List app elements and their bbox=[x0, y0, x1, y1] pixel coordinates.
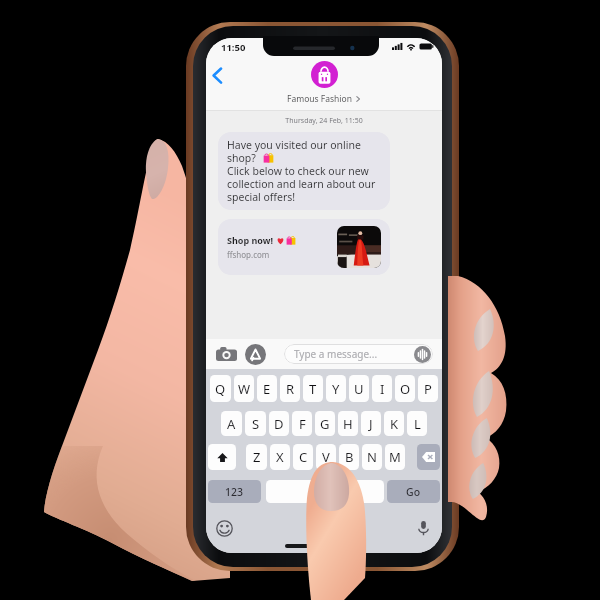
button[interactable]: B bbox=[339, 444, 359, 470]
button[interactable]: X bbox=[270, 444, 290, 470]
button[interactable]: 123 bbox=[208, 480, 261, 503]
staticText: Z bbox=[253, 448, 261, 466]
staticText: T bbox=[309, 380, 317, 398]
button[interactable]: U bbox=[349, 375, 369, 402]
button[interactable]: O bbox=[395, 375, 415, 402]
staticText: Thursday, 24 Feb, 11:50 bbox=[206, 116, 442, 126]
staticText: Famous Fashion bbox=[287, 93, 352, 105]
button[interactable]: Backspace bbox=[417, 444, 440, 470]
button[interactable]: W bbox=[234, 375, 254, 402]
button[interactable]: S bbox=[245, 411, 266, 436]
button[interactable]: K bbox=[384, 411, 404, 436]
staticText: 123 bbox=[225, 485, 244, 499]
staticText: D bbox=[274, 415, 284, 433]
staticText: Y bbox=[332, 380, 340, 398]
button[interactable]: H bbox=[338, 411, 358, 436]
staticText: Q bbox=[215, 380, 226, 398]
button[interactable]: Shift bbox=[208, 444, 236, 470]
button[interactable]: Z bbox=[246, 444, 267, 470]
staticText: B bbox=[345, 448, 354, 466]
button[interactable]: Q bbox=[210, 375, 231, 402]
button[interactable]: N bbox=[362, 444, 382, 470]
staticText: S bbox=[252, 415, 260, 433]
button[interactable]: Have you visited our online shop? Click … bbox=[218, 132, 390, 210]
staticText: ffshop.com bbox=[227, 249, 270, 260]
button[interactable]: Back bbox=[207, 65, 229, 87]
staticText: O bbox=[400, 380, 411, 398]
staticText: R bbox=[286, 380, 295, 398]
staticText: I bbox=[380, 380, 385, 398]
staticText: L bbox=[414, 415, 421, 433]
button[interactable]: L bbox=[407, 411, 427, 436]
button[interactable]: J bbox=[361, 411, 381, 436]
staticText: 11:50 bbox=[221, 41, 246, 54]
staticText: H bbox=[343, 415, 353, 433]
button[interactable]: Type a message... bbox=[284, 344, 433, 364]
button[interactable]: App Store bbox=[245, 344, 266, 365]
staticText: Go bbox=[406, 485, 421, 499]
button[interactable]: F bbox=[292, 411, 312, 436]
button[interactable]: Y bbox=[326, 375, 346, 402]
button[interactable]: Camera bbox=[216, 347, 237, 361]
button[interactable]: I bbox=[372, 375, 392, 402]
staticText: U bbox=[354, 380, 364, 398]
staticText: E bbox=[263, 380, 271, 398]
button[interactable]: A bbox=[221, 411, 242, 436]
button[interactable]: Microphone bbox=[417, 520, 430, 536]
button[interactable]: V bbox=[316, 444, 336, 470]
staticText: W bbox=[238, 380, 251, 398]
staticText: X bbox=[276, 448, 284, 466]
staticText: K bbox=[390, 415, 399, 433]
button[interactable]: C bbox=[293, 444, 313, 470]
staticText: N bbox=[367, 448, 377, 466]
staticText: G bbox=[320, 415, 330, 433]
button[interactable]: Voice message bbox=[414, 346, 431, 363]
button[interactable]: T bbox=[303, 375, 323, 402]
button[interactable]: E bbox=[257, 375, 277, 402]
staticText: Type a message... bbox=[294, 347, 378, 361]
button[interactable]: Famous Fashion bbox=[287, 61, 361, 105]
staticText: Shop now! bbox=[227, 234, 273, 246]
staticText: A bbox=[227, 415, 236, 433]
button[interactable]: M bbox=[385, 444, 405, 470]
staticText: Have you visited our online shop? Click … bbox=[227, 138, 381, 204]
staticText: J bbox=[369, 415, 373, 433]
button[interactable]: Go bbox=[387, 480, 440, 503]
button[interactable]: D bbox=[269, 411, 289, 436]
staticText: M bbox=[389, 448, 401, 466]
button[interactable]: Space bbox=[266, 480, 384, 503]
button[interactable]: P bbox=[418, 375, 438, 402]
button[interactable]: Emoji bbox=[216, 520, 233, 537]
button[interactable]: R bbox=[280, 375, 300, 402]
staticText: F bbox=[299, 415, 306, 433]
staticText: P bbox=[424, 380, 432, 398]
button[interactable]: Shop now! bbox=[218, 219, 390, 275]
button[interactable]: G bbox=[315, 411, 335, 436]
staticText: C bbox=[299, 448, 308, 466]
staticText: V bbox=[322, 448, 330, 466]
